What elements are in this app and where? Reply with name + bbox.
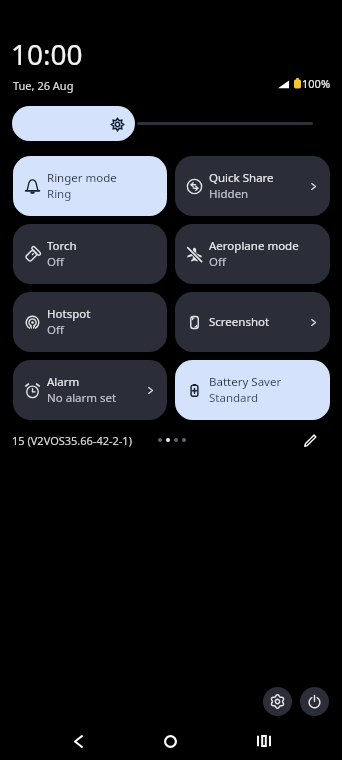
button[interactable]: Ringer mode: [13, 156, 167, 216]
staticText: Ringer mode: [47, 170, 117, 186]
button[interactable]: Alarm: [13, 360, 167, 420]
button[interactable]: Settings: [263, 687, 292, 716]
button[interactable]: Hotspot: [13, 292, 167, 352]
staticText: Off: [47, 254, 64, 270]
staticText: Tue, 26 Aug: [13, 78, 74, 93]
staticText: Screenshot: [209, 314, 270, 330]
button[interactable]: Recent apps: [241, 722, 286, 760]
button[interactable]: Battery Saver: [175, 360, 330, 420]
staticText: Battery Saver: [209, 374, 282, 390]
staticText: 100%: [302, 76, 331, 91]
staticText: Hidden: [209, 186, 249, 202]
button[interactable]: Aeroplane mode: [175, 224, 330, 284]
button[interactable]: Home: [148, 722, 193, 760]
button[interactable]: Power: [300, 687, 329, 716]
staticText: 15 (V2VOS35.66-42-2-1): [12, 433, 132, 448]
button[interactable]: Back: [56, 722, 101, 760]
button[interactable]: Quick Share: [175, 156, 330, 216]
button[interactable]: Torch: [13, 224, 167, 284]
staticText: 10:00: [11, 35, 83, 73]
staticText: Aeroplane mode: [209, 238, 299, 254]
staticText: Alarm: [47, 374, 80, 390]
staticText: Off: [47, 322, 64, 338]
button[interactable]: Edit: [299, 429, 321, 451]
button[interactable]: Brightness: [12, 106, 135, 141]
staticText: Standard: [209, 390, 259, 406]
staticText: Ring: [47, 186, 72, 202]
staticText: Quick Share: [209, 170, 274, 186]
staticText: Torch: [47, 238, 77, 254]
staticText: Hotspot: [47, 306, 91, 322]
staticText: No alarm set: [47, 390, 117, 406]
staticText: Off: [209, 254, 226, 270]
button[interactable]: Screenshot: [175, 292, 330, 352]
